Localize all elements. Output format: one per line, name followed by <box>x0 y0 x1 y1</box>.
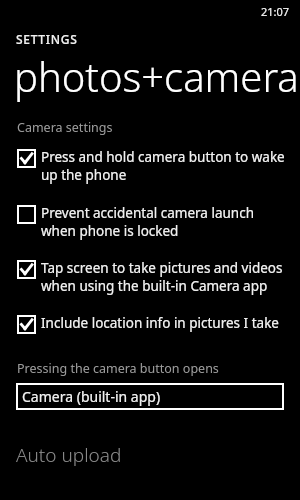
staticText: SETTINGS <box>16 31 78 47</box>
button[interactable]: Press and hold camera button to wake <box>0 136 300 184</box>
staticText: up the phone <box>41 166 127 184</box>
staticText: Camera (built-in app) <box>22 387 161 406</box>
button[interactable]: Camera (built-in app) <box>16 383 284 410</box>
staticText: Auto upload <box>16 442 122 468</box>
staticText: photos+camera <box>14 49 299 103</box>
staticText: Press and hold camera button to wake <box>41 148 285 166</box>
staticText: Prevent accidental camera launch <box>41 204 254 222</box>
staticText: Tap screen to take pictures and videos <box>41 259 283 277</box>
button[interactable]: Tap screen to take pictures and videos <box>0 240 300 295</box>
staticText: when phone is locked <box>41 222 179 240</box>
staticText: Include location info in pictures I take <box>41 314 279 332</box>
button[interactable]: Include location info in pictures I take <box>0 295 300 334</box>
staticText: 21:07 <box>261 4 290 19</box>
staticText: Pressing the camera button opens <box>17 360 219 377</box>
staticText: when using the built-in Camera app <box>41 277 268 295</box>
button[interactable]: Prevent accidental camera launch <box>0 184 300 240</box>
staticText: Camera settings <box>17 119 113 136</box>
